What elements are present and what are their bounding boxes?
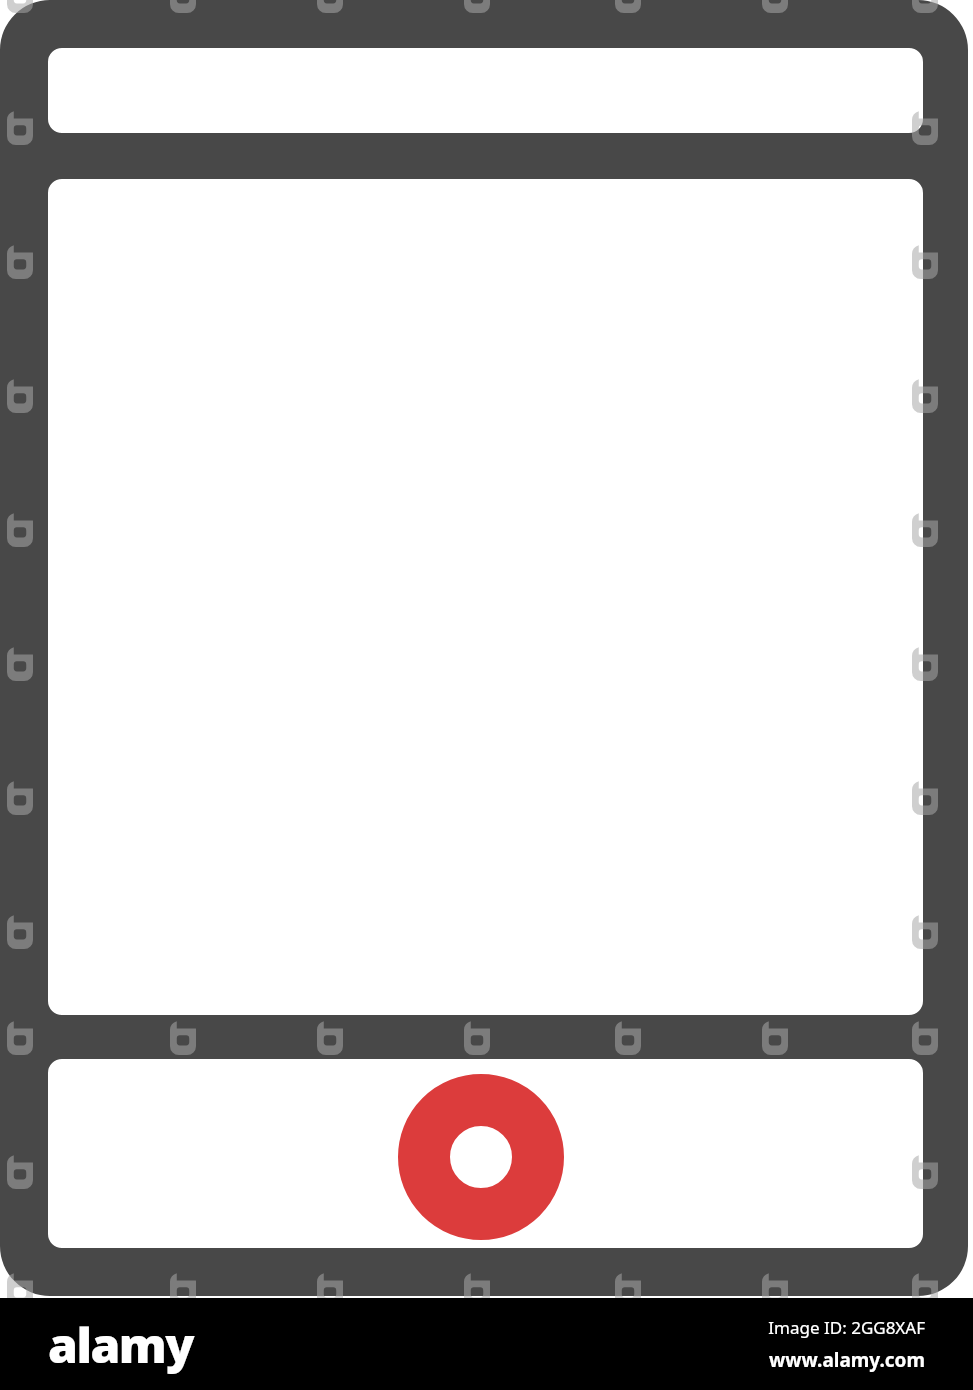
button[interactable]: alamy [48, 1312, 194, 1377]
button[interactable]: Image ID: 2GG8XAF [768, 1316, 925, 1373]
button[interactable]: Tablet device icon [0, 0, 973, 1298]
staticText: Image ID: 2GG8XAF [768, 1316, 925, 1339]
staticText: alamy [48, 1312, 194, 1377]
staticText: www.alamy.com [769, 1347, 925, 1373]
